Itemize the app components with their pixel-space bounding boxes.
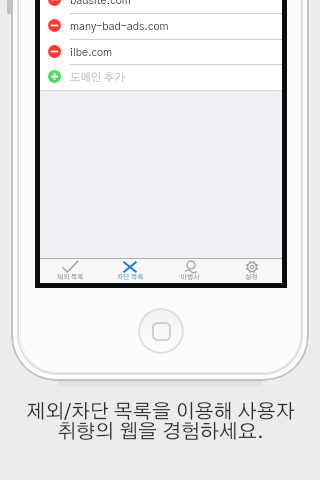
- staticText: 마법사: [181, 274, 200, 281]
- staticText: 취향의 웹을 경험하세요.: [57, 422, 264, 442]
- button[interactable]: [138, 308, 184, 354]
- staticText: 제외/차단 목록을 이용해 사용자: [26, 402, 295, 422]
- staticText: many-bad-ads.com: [70, 21, 169, 32]
- button[interactable]: many-bad-ads.com: [40, 13, 282, 39]
- staticText: badsite.com: [70, 0, 131, 6]
- button[interactable]: 제외 목록: [40, 258, 100, 283]
- button[interactable]: 도메인 추가: [40, 64, 282, 90]
- staticText: 차단 목록: [117, 274, 144, 281]
- staticText: ilbe.com: [70, 47, 113, 58]
- button[interactable]: 마법사: [160, 258, 221, 283]
- button[interactable]: badsite.com: [40, 0, 282, 13]
- button[interactable]: ilbe.com: [40, 39, 282, 65]
- staticText: 설정: [245, 274, 258, 281]
- button[interactable]: 설정: [221, 258, 282, 283]
- staticText: 제외 목록: [57, 274, 84, 281]
- button[interactable]: 차단 목록: [100, 258, 160, 283]
- staticText: 도메인 추가: [70, 72, 125, 83]
